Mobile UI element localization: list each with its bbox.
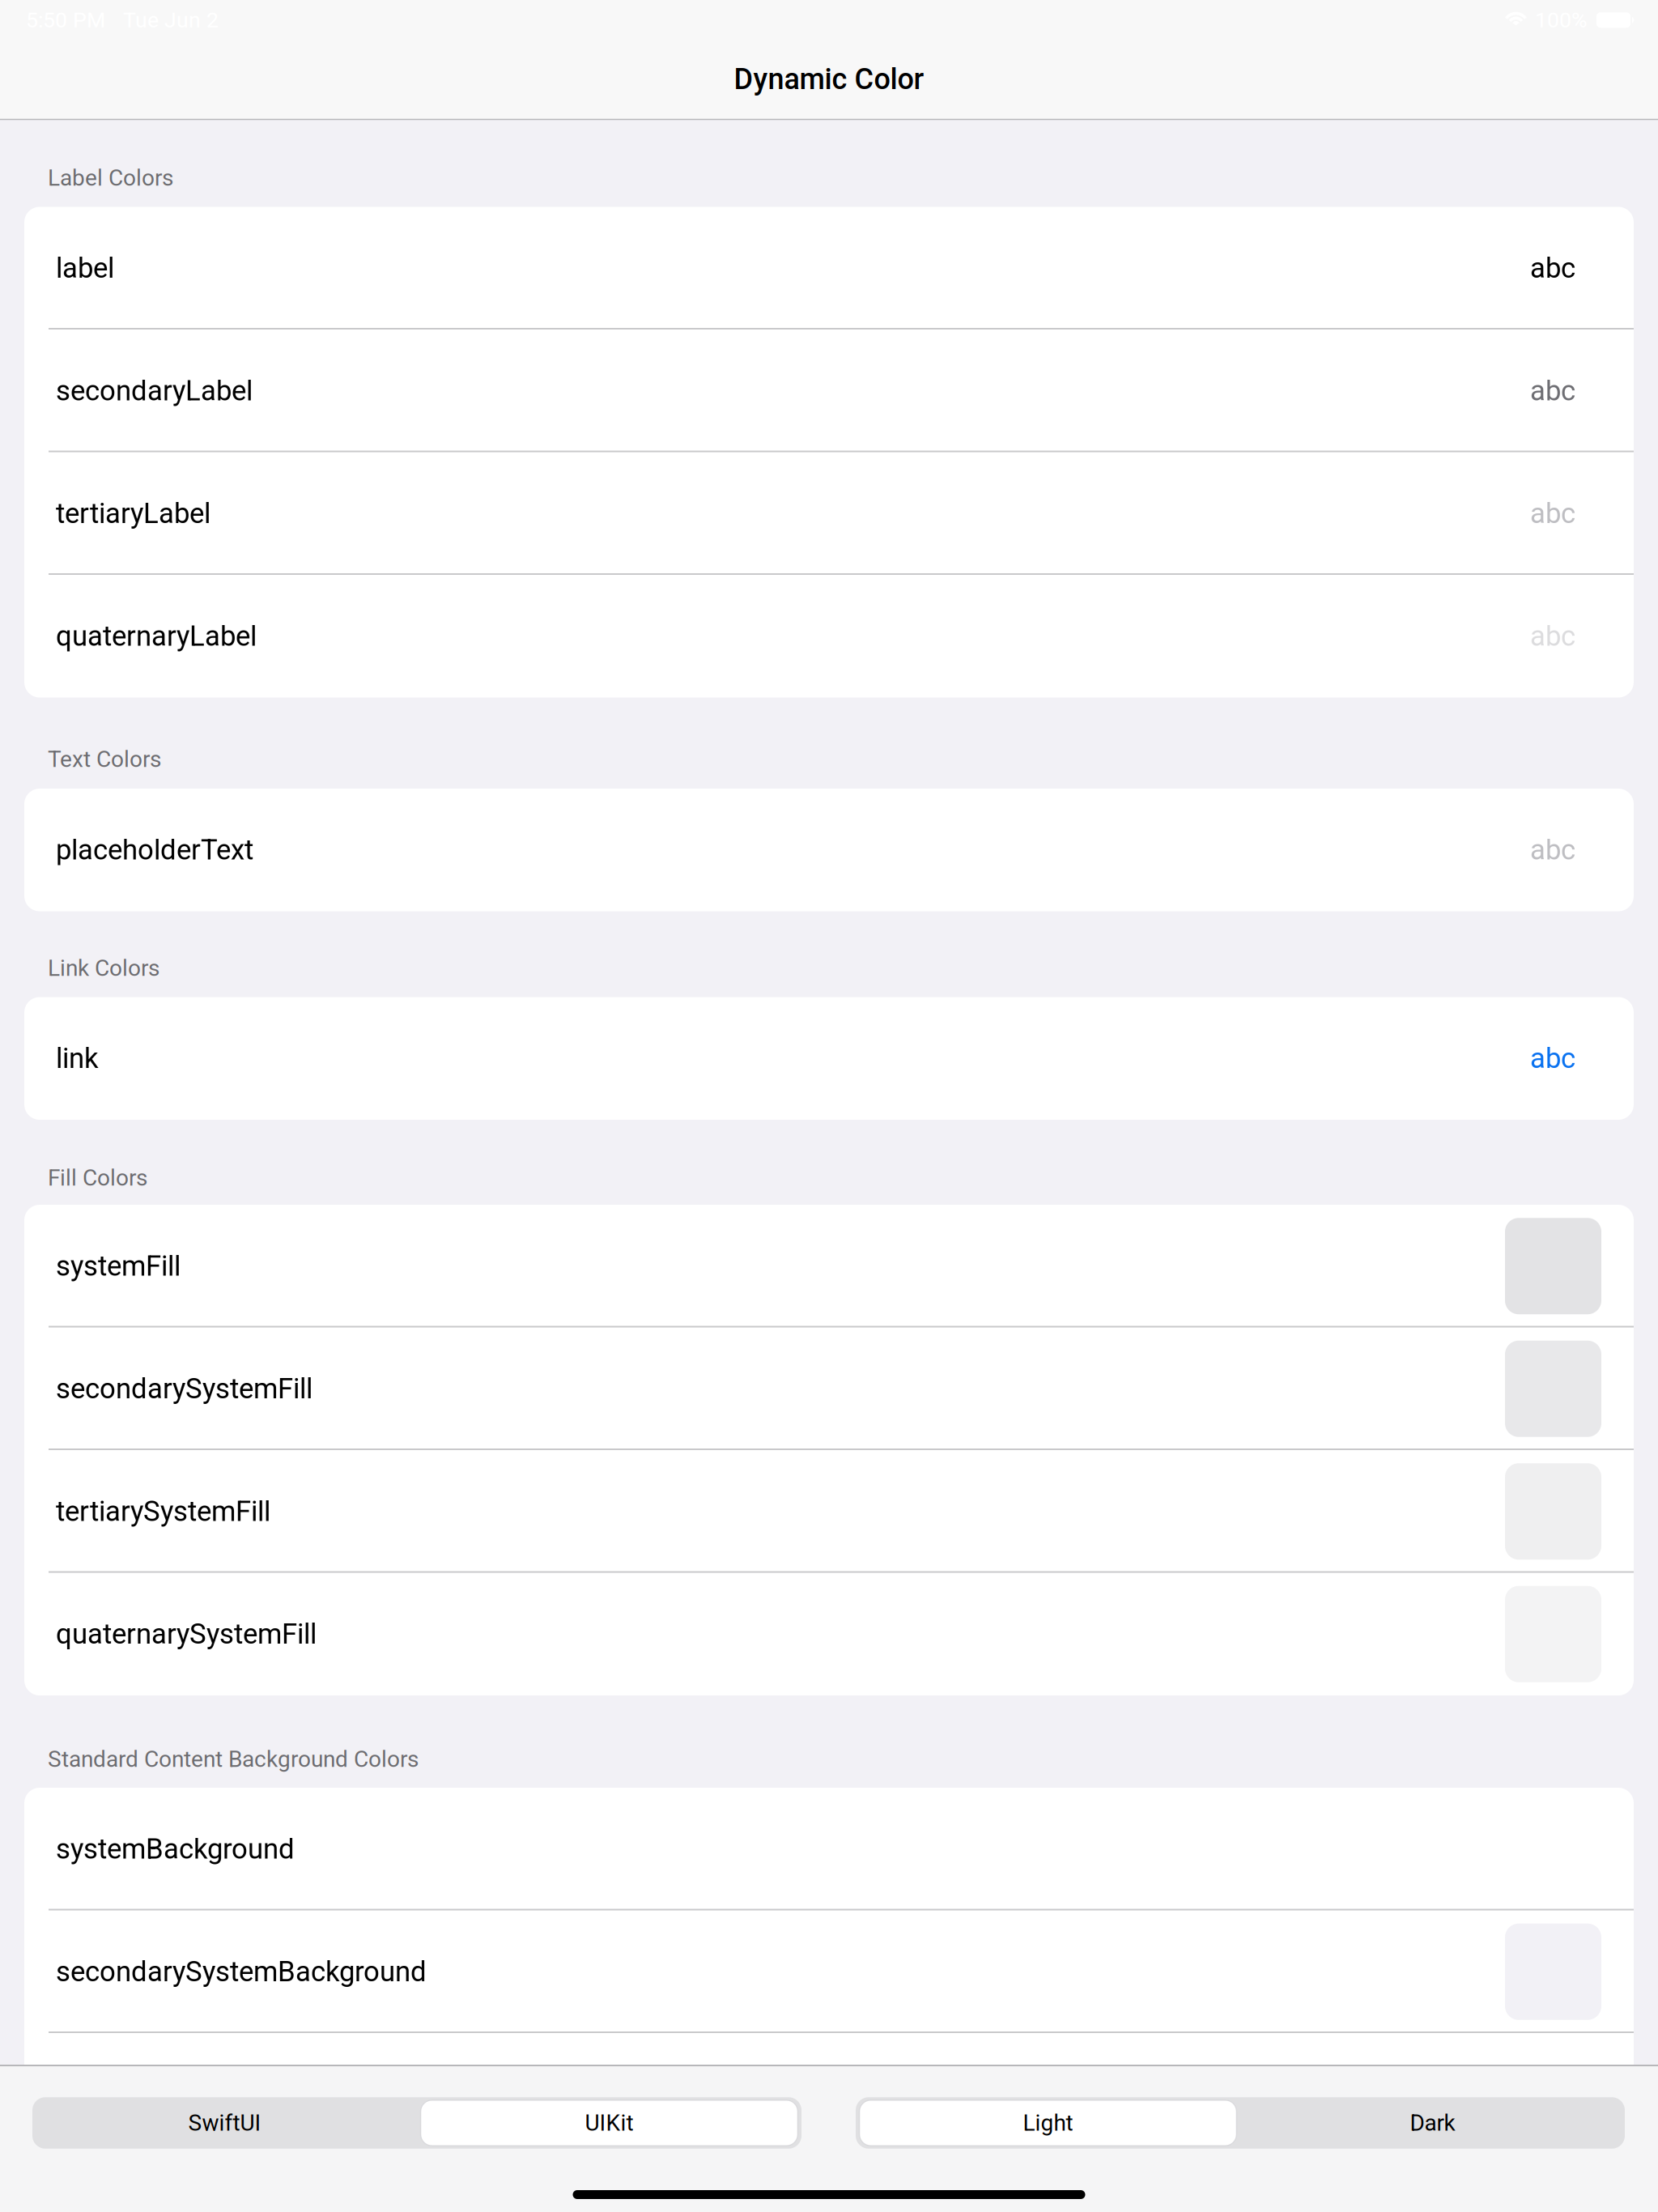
- button[interactable]: Light: [856, 2097, 1240, 2149]
- staticText: UIKit: [585, 2110, 633, 2136]
- staticText: abc: [1530, 1042, 1575, 1075]
- staticText: Standard Content Background Colors: [48, 1746, 419, 1772]
- staticText: secondarySystemBackground: [56, 1955, 427, 1988]
- staticText: Light: [1023, 2110, 1073, 2136]
- button[interactable]: tertiaryLabel: [24, 452, 1634, 575]
- button[interactable]: label: [24, 207, 1634, 330]
- button[interactable]: secondarySystemBackground: [24, 1910, 1634, 2033]
- button[interactable]: quaternarySystemFill: [24, 1573, 1634, 1695]
- staticText: Text Colors: [48, 746, 161, 772]
- button[interactable]: tertiarySystemFill: [24, 1450, 1634, 1573]
- button[interactable]: SwiftUI: [32, 2097, 417, 2149]
- staticText: Link Colors: [48, 955, 159, 981]
- staticText: abc: [1530, 374, 1575, 407]
- button[interactable]: systemBackground: [24, 1788, 1634, 1910]
- staticText: abc: [1530, 833, 1575, 866]
- staticText: secondaryLabel: [56, 374, 253, 407]
- button[interactable]: UIKit: [417, 2097, 801, 2149]
- staticText: quaternarySystemFill: [56, 1618, 317, 1650]
- staticText: Fill Colors: [48, 1164, 147, 1191]
- button[interactable]: secondarySystemFill: [24, 1327, 1634, 1450]
- button[interactable]: quaternaryLabel: [24, 575, 1634, 698]
- staticText: label: [56, 252, 114, 285]
- button[interactable]: placeholderText: [24, 789, 1634, 911]
- staticText: systemFill: [56, 1250, 181, 1283]
- staticText: systemBackground: [56, 1833, 295, 1865]
- staticText: quaternaryLabel: [56, 620, 257, 653]
- button[interactable]: systemFill: [24, 1205, 1634, 1327]
- staticText: link: [56, 1042, 99, 1075]
- button[interactable]: tertiarySystemBackground: [24, 2033, 1634, 2156]
- button[interactable]: Dark: [1240, 2097, 1625, 2149]
- staticText: Dynamic Color: [734, 62, 924, 96]
- staticText: abc: [1530, 497, 1575, 530]
- staticText: placeholderText: [56, 833, 253, 866]
- button[interactable]: link: [24, 997, 1634, 1120]
- staticText: tertiarySystemBackground: [56, 2078, 385, 2111]
- staticText: tertiarySystemFill: [56, 1495, 270, 1528]
- staticText: SwiftUI: [188, 2110, 261, 2136]
- staticText: tertiaryLabel: [56, 497, 210, 530]
- staticText: secondarySystemFill: [56, 1372, 312, 1405]
- staticText: Dark: [1410, 2110, 1455, 2136]
- staticText: abc: [1530, 252, 1575, 285]
- staticText: abc: [1530, 620, 1575, 653]
- staticText: Label Colors: [48, 165, 173, 191]
- button[interactable]: secondaryLabel: [24, 330, 1634, 452]
